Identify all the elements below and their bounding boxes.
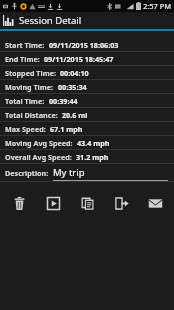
- staticText: 00:04:10: [60, 68, 89, 78]
- button[interactable]: Moving Time:: [0, 80, 174, 94]
- button[interactable]: Overall Avg Speed:: [0, 150, 174, 164]
- staticText: 67.1 mph: [50, 124, 83, 134]
- button[interactable]: Start Time:: [0, 38, 174, 52]
- staticText: Stopped Time:: [5, 68, 56, 78]
- staticText: 00:35:34: [58, 82, 87, 92]
- staticText: 43.4 mph: [77, 138, 110, 148]
- button[interactable]: Play: [38, 190, 68, 216]
- staticText: My trip: [53, 166, 85, 179]
- button[interactable]: Total Time:: [0, 94, 174, 108]
- staticText: Start Time:: [5, 40, 45, 50]
- staticText: Overall Avg Speed:: [5, 152, 72, 162]
- button[interactable]: Max Speed:: [0, 122, 174, 136]
- staticText: 2:57 PM: [143, 1, 172, 11]
- staticText: 31.2 mph: [76, 152, 109, 162]
- staticText: Total Time:: [5, 96, 45, 106]
- button[interactable]: Stopped Time:: [0, 66, 174, 80]
- button[interactable]: End Time:: [0, 52, 174, 66]
- staticText: Session Detail: [19, 14, 82, 27]
- staticText: Moving Time:: [5, 82, 54, 92]
- staticText: Description:: [5, 168, 49, 178]
- button[interactable]: My trip: [53, 164, 168, 181]
- button[interactable]: Total Distance:: [0, 108, 174, 122]
- staticText: 09/11/2015 18:06:03: [49, 40, 119, 50]
- button[interactable]: Session Detail: [0, 12, 174, 29]
- button[interactable]: Email: [140, 190, 170, 216]
- button[interactable]: Copy: [72, 190, 102, 216]
- button[interactable]: Delete: [4, 190, 34, 216]
- button[interactable]: Export: [106, 190, 136, 216]
- staticText: 09/11/2015 18:45:47: [44, 54, 114, 64]
- staticText: Moving Avg Speed:: [5, 138, 73, 148]
- staticText: End Time:: [5, 54, 40, 64]
- staticText: 00:39:44: [49, 96, 78, 106]
- staticText: Total Distance:: [5, 110, 58, 120]
- staticText: Max Speed:: [5, 124, 46, 134]
- button[interactable]: Moving Avg Speed:: [0, 136, 174, 150]
- staticText: 20.6 mi: [62, 110, 88, 120]
